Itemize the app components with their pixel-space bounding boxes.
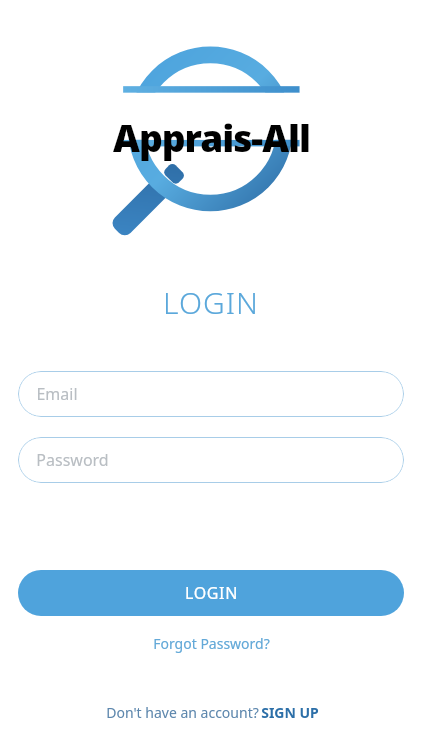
staticText: Forgot Password? xyxy=(153,634,270,653)
staticText: SIGN UP xyxy=(261,703,319,722)
button[interactable]: Forgot Password? xyxy=(143,630,280,657)
button[interactable]: Don't have an account? xyxy=(94,699,329,726)
staticText: LOGIN xyxy=(163,282,259,323)
staticText: Password xyxy=(36,449,109,471)
button[interactable]: Password xyxy=(18,437,404,483)
staticText: Apprais-All xyxy=(113,112,310,162)
staticText: Email xyxy=(36,383,78,405)
staticText: Don't have an account? xyxy=(104,703,261,722)
button[interactable]: Email xyxy=(18,371,404,417)
staticText: LOGIN xyxy=(185,582,238,604)
button[interactable]: LOGIN xyxy=(18,570,404,616)
